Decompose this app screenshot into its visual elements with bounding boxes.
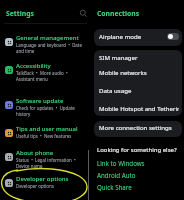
staticText: Check for updates • Update xyxy=(16,105,75,111)
button[interactable]: Mobile networks xyxy=(94,63,182,81)
button[interactable]: About phone xyxy=(0,149,91,171)
staticText: Assistant menu xyxy=(16,76,48,82)
staticText: Developer options xyxy=(16,183,54,189)
button[interactable]: Data usage xyxy=(94,81,182,99)
staticText: Android Auto xyxy=(97,171,136,179)
staticText: Mobile networks xyxy=(99,68,147,76)
staticText: Mobile Hotspot and Tethering xyxy=(99,104,179,112)
staticText: SIM manager xyxy=(99,53,138,61)
button[interactable]: More connection settings xyxy=(94,121,182,132)
button[interactable]: Link to Windows xyxy=(97,159,145,167)
staticText: About phone xyxy=(16,149,54,157)
button[interactable]: Airplane mode xyxy=(94,29,182,43)
staticText: Looking for something else? xyxy=(97,146,177,154)
staticText: Airplane mode xyxy=(99,32,142,40)
button[interactable]: Android Auto xyxy=(97,171,136,179)
staticText: Language and keyboard • Date xyxy=(16,42,82,48)
staticText: Device name xyxy=(16,163,43,169)
staticText: Connections xyxy=(97,9,140,18)
staticText: history xyxy=(16,111,31,117)
staticText: Accessibility xyxy=(16,62,51,70)
staticText: Settings xyxy=(6,9,34,18)
button[interactable]: Mobile Hotspot and Tethering xyxy=(94,99,182,116)
staticText: TalkBack • More audio • xyxy=(16,70,68,76)
staticText: Data usage xyxy=(99,86,132,94)
staticText: General management xyxy=(16,34,79,42)
button[interactable]: Quick Share xyxy=(97,183,132,191)
staticText: Tips and user manual xyxy=(16,125,78,133)
staticText: Quick Share xyxy=(97,183,132,191)
staticText: and time xyxy=(16,48,35,54)
button[interactable]: Search xyxy=(77,7,89,19)
button[interactable]: Developer options xyxy=(0,175,91,191)
staticText: More connection settings xyxy=(99,123,172,131)
staticText: Software update xyxy=(16,97,64,105)
staticText: Developer options xyxy=(16,175,69,183)
button[interactable]: Accessibility xyxy=(0,62,91,84)
button[interactable]: General management xyxy=(0,34,91,56)
button[interactable]: SIM manager xyxy=(94,50,182,63)
staticText: Useful tips • New features xyxy=(16,133,72,139)
staticText: Status • Legal information • xyxy=(16,157,76,163)
button[interactable]: Software update xyxy=(0,97,91,119)
button[interactable]: Tips and user manual xyxy=(0,125,91,141)
staticText: Link to Windows xyxy=(97,159,145,167)
